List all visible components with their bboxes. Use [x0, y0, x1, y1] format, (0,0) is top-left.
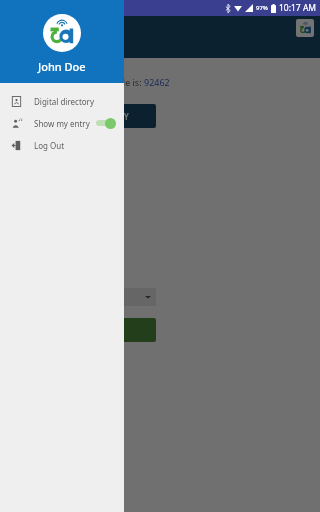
button[interactable]: MY KEYS [70, 40, 99, 58]
staticText: Show my entry [34, 118, 90, 129]
staticText: MY KEYS [70, 44, 99, 54]
staticText: 10:17 AM [279, 2, 317, 14]
staticText: VISITOR KEYS [13, 44, 58, 54]
button[interactable] [0, 0, 320, 512]
staticText: 97% [256, 4, 268, 12]
button[interactable]: Log Out [0, 134, 124, 156]
staticText: John Doe [38, 59, 86, 74]
button[interactable]: Show my entry [0, 112, 124, 134]
staticText: Luxury Building [13, 21, 87, 35]
button[interactable]: Door2 [36, 288, 156, 306]
button[interactable]: CREATE NEW KEY [36, 104, 156, 128]
button[interactable]: Digital directory [0, 90, 124, 112]
button[interactable]: App logo [296, 19, 314, 37]
staticText: Digital directory [34, 96, 94, 107]
button[interactable]: John Doe [0, 0, 124, 83]
staticText: CREATE NEW KEY [64, 111, 129, 122]
staticText: Log Out [34, 140, 65, 151]
staticText: 92462 [144, 76, 170, 88]
button[interactable]: VISITOR KEYS [13, 40, 58, 58]
button[interactable]: OPEN DOOR [36, 318, 156, 342]
staticText: Your private intercom code is: [16, 76, 144, 88]
